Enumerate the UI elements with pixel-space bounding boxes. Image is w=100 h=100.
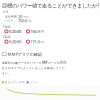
staticText: パワー xyxy=(29,81,38,84)
staticText: 0:20:00 xyxy=(9,29,21,34)
staticText: [W] xyxy=(27,19,31,22)
staticText: 目標: xyxy=(2,10,9,13)
staticText: 最近の3ヶ月間 xyxy=(5,80,25,84)
staticText: [W] xyxy=(40,40,44,43)
staticText: 166.9 xyxy=(30,29,39,34)
staticText: MMPグラフの確認 xyxy=(8,51,42,57)
staticText: 171.0 xyxy=(30,39,39,44)
staticText: 0:20:00 xyxy=(9,39,21,44)
staticText: 2回目 xyxy=(3,35,11,38)
staticText: パワー xyxy=(5,19,14,22)
staticText: 以上のエリアに入っていることを確認してくだ xyxy=(2,66,65,70)
staticText: 目標のパワー値で走ることができましたか? xyxy=(2,2,99,9)
staticText: 複数回のLapデータのパワーがMMPカーブの80% xyxy=(2,61,66,64)
staticText: 150.0 xyxy=(18,18,27,23)
staticText: 20 xyxy=(18,14,22,19)
staticText: [W] xyxy=(40,30,44,33)
staticText: さい。 xyxy=(2,72,11,75)
staticText: 1回目 xyxy=(3,25,11,28)
staticText: 走行時間 xyxy=(5,15,17,18)
staticText: [min] xyxy=(22,15,29,18)
